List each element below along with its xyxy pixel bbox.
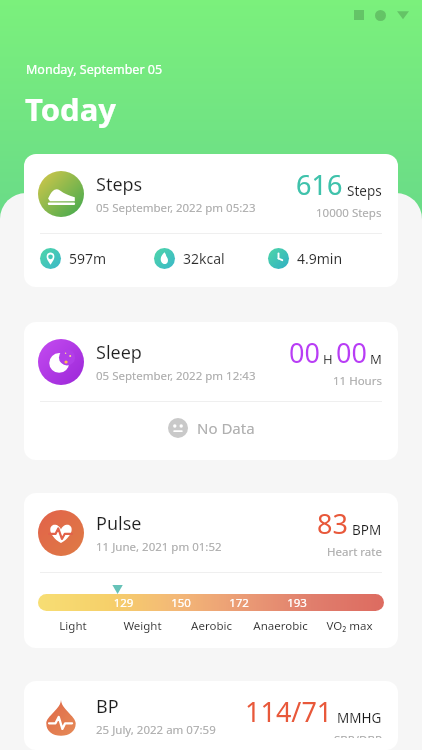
button[interactable]: 32kcal [154,248,268,269]
staticText: 25 July, 2022 am 07:59 [96,722,216,738]
staticText: 32kcal [183,249,225,268]
staticText: 11 Hours [333,373,382,389]
other: Sleep [38,339,84,385]
staticText: Steps [96,172,143,197]
staticText: SBP/DBP [334,732,382,738]
staticText: 129 [95,595,152,611]
button[interactable]: Steps [24,154,398,287]
staticText: 11 June, 2021 pm 01:52 [96,539,222,555]
staticText: Weight [108,618,177,634]
staticText: 172 [210,595,268,611]
staticText: Today [25,88,116,130]
staticText: Light [38,618,108,634]
staticText: MMHG [337,709,382,727]
staticText: 114/71 [245,693,333,730]
staticText: 616 [296,166,343,203]
staticText: Monday, September 05 [26,61,163,78]
button[interactable]: Blood pressure [24,681,398,750]
staticText: 83 [317,505,348,542]
staticText: Aerobic [177,618,246,634]
button[interactable]: Sleep [24,322,398,460]
staticText: M [370,350,382,368]
other: Pulse [38,510,84,556]
other: Steps [38,171,84,217]
staticText: Sleep [96,340,142,365]
staticText: 05 September, 2022 pm 12:43 [96,368,256,384]
staticText: Pulse [96,511,142,536]
other: Blood pressure [38,693,84,738]
staticText: 150 [152,595,210,611]
staticText: H [323,350,333,368]
staticText: No Data [197,418,255,438]
button[interactable]: 4.9min [268,248,382,269]
staticText: 597m [69,249,107,268]
staticText: Heart rate [327,544,382,560]
staticText: 4.9min [297,249,343,268]
staticText: Steps [347,182,382,200]
staticText: 00 [336,334,367,371]
staticText: 05 September, 2022 pm 05:23 [96,200,256,216]
staticText: BP [96,694,119,719]
button[interactable]: 597m [40,248,154,269]
staticText: BPM [352,521,382,539]
button[interactable]: Pulse [24,493,398,648]
staticText: VO₂ max [315,618,384,634]
staticText: 00 [289,334,320,371]
staticText: 10000 Steps [316,205,382,221]
staticText: Anaerobic [246,618,315,634]
staticText: 193 [268,595,326,611]
